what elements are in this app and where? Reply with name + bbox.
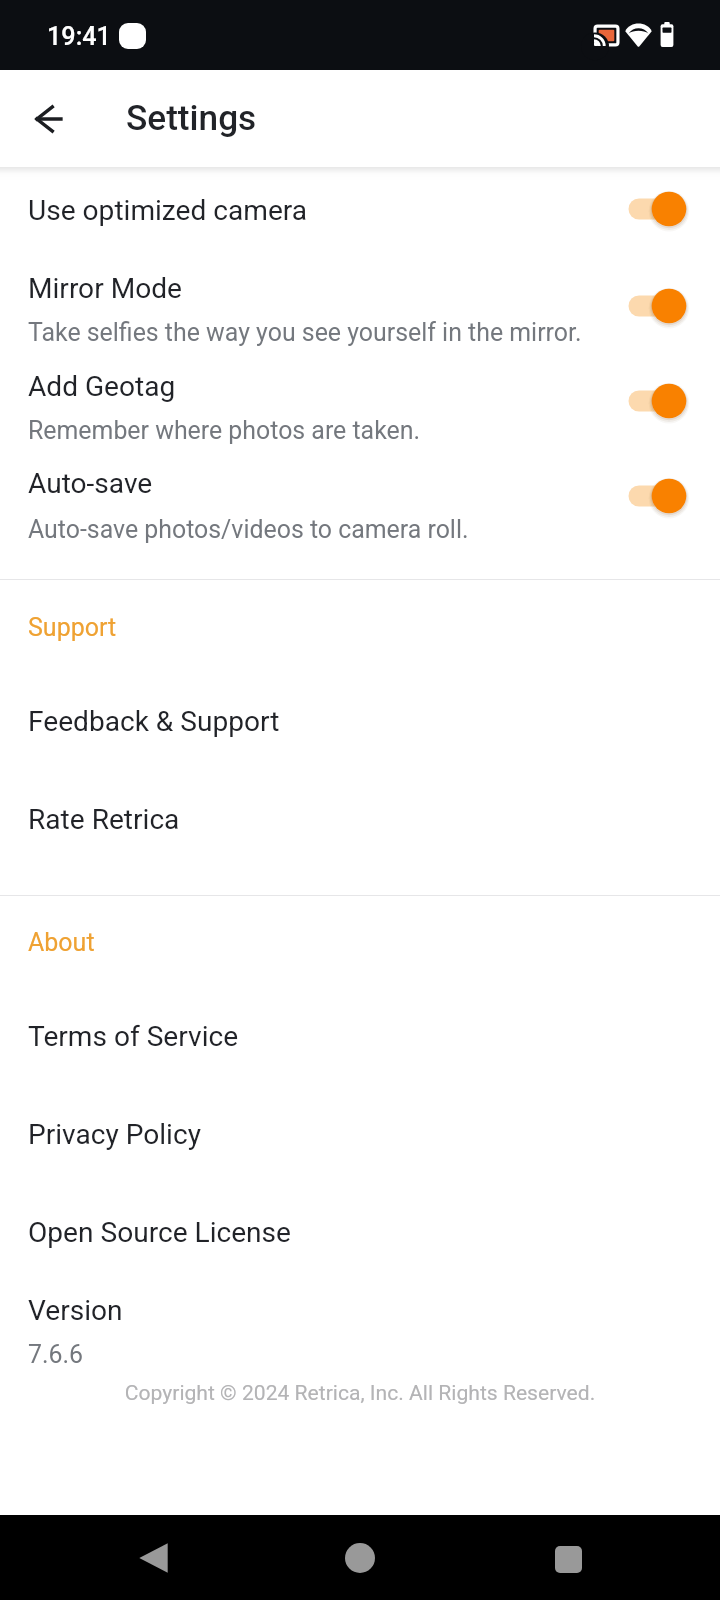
staticText: Remember where photos are taken. [28,416,421,445]
staticText: 7.6.6 [28,1340,84,1369]
staticText: Mirror Mode [28,272,182,305]
staticText: Privacy Policy [28,1118,201,1151]
staticText: Support [28,613,117,642]
button[interactable]: Mirror Mode [0,252,720,350]
button[interactable]: Toggle setting [622,283,688,329]
staticText: Auto-save [28,467,153,500]
staticText: Terms of Service [28,1020,239,1053]
staticText: Use optimized camera [28,194,308,227]
button[interactable]: Version [0,1262,720,1372]
button[interactable]: Recent apps [528,1519,608,1599]
staticText: Add Geotag [28,370,176,403]
button[interactable]: Open Source License [0,1173,720,1262]
button[interactable]: Back [21,91,77,147]
staticText: Rate Retrica [28,803,180,836]
staticText: Open Source License [28,1216,291,1249]
button[interactable]: Terms of Service [0,977,720,1075]
button[interactable]: Use optimized camera [0,176,720,252]
staticText: 19:41 [47,22,111,52]
staticText: Take selfies the way you see yourself in… [28,318,582,347]
button[interactable]: Toggle setting [622,378,688,424]
button[interactable]: Add Geotag [0,350,720,448]
button[interactable]: Toggle setting [622,473,688,519]
button[interactable]: Feedback & Support [0,662,720,760]
staticText: About [28,928,95,957]
staticText: Copyright © 2024 Retrica, Inc. All Right… [0,1380,720,1405]
button[interactable]: Auto-save [0,448,720,546]
staticText: Feedback & Support [28,705,280,738]
button[interactable]: Home [320,1518,400,1598]
button[interactable]: Back [113,1518,193,1598]
staticText: Settings [126,97,257,138]
button[interactable]: Privacy Policy [0,1075,720,1173]
staticText: Auto-save photos/videos to camera roll. [28,515,469,544]
staticText: Version [28,1294,123,1327]
button[interactable]: Rate Retrica [0,760,720,858]
button[interactable]: Toggle setting [622,186,688,232]
